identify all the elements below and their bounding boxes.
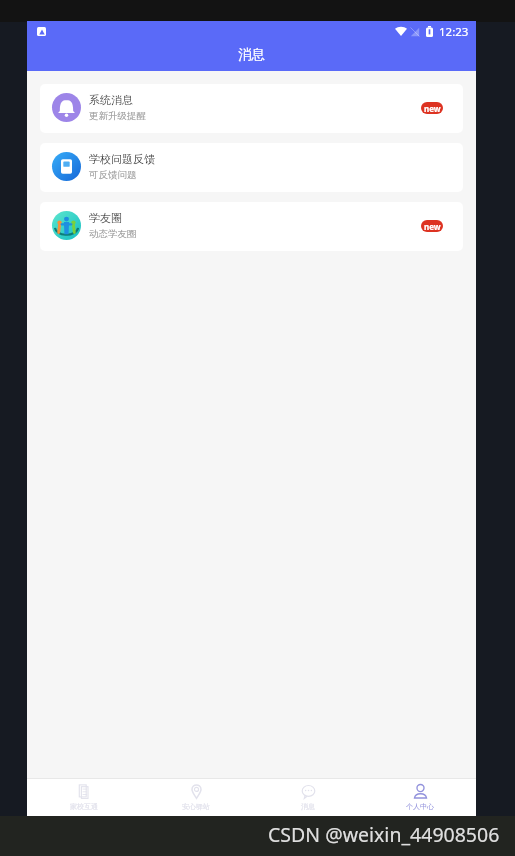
- staticText: 个人中心: [406, 802, 434, 811]
- button[interactable]: 家校互通: [27, 779, 140, 816]
- button[interactable]: 消息: [252, 779, 364, 816]
- staticText: 可反馈问题: [89, 169, 137, 181]
- staticText: 消息: [238, 46, 265, 63]
- staticText: 消息: [301, 802, 315, 811]
- staticText: 12:23: [439, 24, 469, 40]
- button[interactable]: 系统消息: [40, 84, 463, 133]
- staticText: 系统消息: [89, 93, 133, 107]
- staticText: 安心驿站: [182, 802, 210, 811]
- staticText: 更新升级提醒: [89, 110, 146, 122]
- staticText: new: [424, 221, 441, 232]
- button[interactable]: 安心驿站: [140, 779, 252, 816]
- staticText: 学校问题反馈: [89, 152, 155, 166]
- staticText: 学友圈: [89, 211, 122, 225]
- staticText: CSDN @weixin_44908506: [268, 821, 500, 848]
- staticText: new: [424, 103, 441, 114]
- button[interactable]: 学友圈: [40, 202, 463, 251]
- staticText: 家校互通: [70, 802, 98, 811]
- button[interactable]: 个人中心: [364, 779, 476, 816]
- button[interactable]: 学校问题反馈: [40, 143, 463, 192]
- staticText: 动态学友圈: [89, 228, 137, 240]
